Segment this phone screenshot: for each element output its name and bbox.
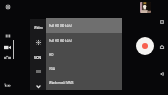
button[interactable]: VGA bbox=[46, 62, 122, 76]
staticText: SCN bbox=[34, 55, 42, 60]
button[interactable]: Full HD (60 kl./s) bbox=[46, 33, 122, 48]
button[interactable]: Back bbox=[157, 69, 166, 78]
staticText: Wiadomość MMS bbox=[49, 81, 74, 85]
button[interactable]: Resolution bbox=[30, 66, 46, 77]
button[interactable]: Home bbox=[157, 42, 166, 51]
button[interactable]: Full HD (30 kl./s) bbox=[46, 18, 122, 33]
button[interactable]: Wiadomość MMS bbox=[46, 76, 122, 90]
button[interactable]: Wideo bbox=[30, 22, 46, 33]
button[interactable]: HD bbox=[46, 48, 122, 62]
button[interactable]: More options bbox=[30, 81, 46, 92]
button[interactable]: Brightness bbox=[30, 37, 46, 48]
button[interactable]: Shooting modes bbox=[3, 31, 12, 40]
button[interactable]: Record bbox=[136, 37, 154, 55]
button[interactable]: Photo mode bbox=[3, 53, 11, 61]
staticText: HD bbox=[49, 53, 54, 57]
button[interactable]: Gallery bbox=[140, 2, 151, 13]
button[interactable]: Switch camera bbox=[2, 80, 12, 90]
button[interactable]: Settings bbox=[3, 2, 12, 11]
staticText: Wideo bbox=[34, 26, 43, 30]
button[interactable]: Recents bbox=[157, 17, 166, 26]
staticText: VGA bbox=[49, 67, 55, 71]
staticText: Full HD (30 kl./s) bbox=[49, 24, 72, 28]
button[interactable]: Video mode bbox=[3, 43, 11, 51]
staticText: Full HD (60 kl./s) bbox=[49, 39, 72, 43]
button[interactable]: SCN bbox=[30, 52, 46, 63]
